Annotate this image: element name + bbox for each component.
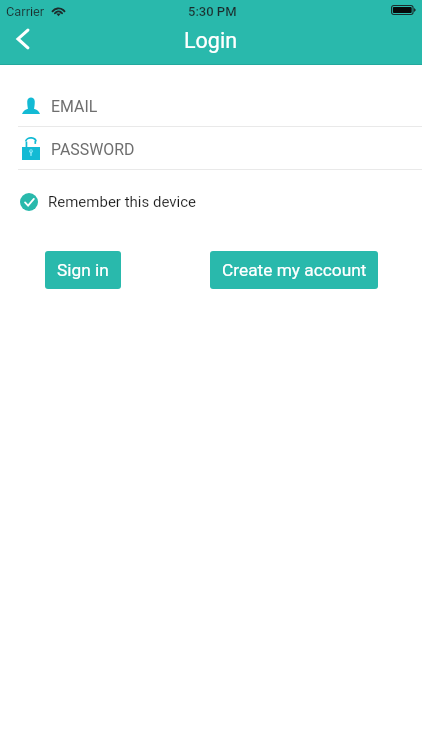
staticText: 5:30 PM [188, 4, 237, 19]
staticText: Create my account [222, 260, 367, 280]
button[interactable]: Create my account [210, 251, 378, 289]
staticText: EMAIL [51, 97, 98, 116]
staticText: Sign in [57, 260, 109, 280]
button[interactable]: Sign in [45, 251, 121, 289]
staticText: Login [184, 28, 238, 53]
button[interactable]: Back [0, 22, 45, 64]
staticText: Carrier [6, 4, 45, 19]
staticText: PASSWORD [51, 140, 135, 159]
button[interactable]: Remember this device [0, 180, 422, 224]
button[interactable]: PASSWORD [0, 127, 422, 169]
button[interactable]: EMAIL [0, 84, 422, 126]
staticText: Remember this device [48, 193, 196, 211]
